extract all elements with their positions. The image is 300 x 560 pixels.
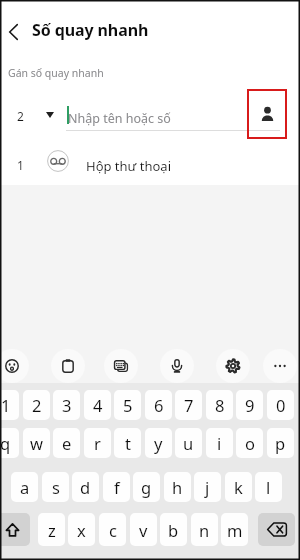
staticText: 1 [1,394,11,416]
button[interactable]: u [175,428,202,458]
staticText: s [52,476,60,498]
staticText: x [77,519,86,541]
staticText: z [48,519,56,541]
staticText: Số quay nhanh [32,19,149,41]
button[interactable]: More options [263,349,297,383]
button[interactable]: s [42,472,69,502]
staticText: l [266,476,271,498]
staticText: 6 [154,394,164,416]
staticText: v [139,519,148,541]
button[interactable]: 1 [0,390,19,420]
staticText: y [154,432,163,454]
staticText: w [30,432,43,454]
button[interactable] [0,144,300,184]
staticText: n [199,519,210,541]
staticText: h [172,476,183,498]
button[interactable]: Open contacts [248,90,286,138]
button[interactable]: Clipboard [51,349,85,383]
staticText: 1 [17,157,24,173]
button[interactable]: y [145,428,172,458]
staticText: f [114,476,120,498]
button[interactable]: c [99,513,126,546]
staticText: d [80,476,91,498]
staticText: Hộp thư thoại [86,157,171,175]
staticText: t [125,432,131,454]
button[interactable]: Keyboard settings [216,349,250,383]
button[interactable]: e [53,428,80,458]
staticText: r [94,432,101,454]
button[interactable]: n [191,513,218,546]
button[interactable]: h [164,472,191,502]
staticText: 3 [62,394,72,416]
staticText: q [0,432,11,454]
button[interactable]: p [267,428,294,458]
button[interactable]: Select speed dial number [38,103,62,127]
button[interactable]: Backspace [258,513,295,546]
button[interactable]: 5 [114,390,141,420]
button[interactable]: a [11,472,38,502]
staticText: Gán số quay nhanh [8,66,104,80]
staticText: i [217,432,222,454]
button[interactable]: Stickers [104,349,138,383]
staticText: j [205,476,210,498]
staticText: k [234,476,243,498]
staticText: g [141,476,152,498]
button[interactable]: 2 [23,390,50,420]
button[interactable]: 0 [267,390,294,420]
button[interactable]: Voice input [160,349,194,383]
staticText: 8 [215,394,225,416]
staticText: u [183,432,194,454]
staticText: m [227,519,243,541]
button[interactable]: f [103,472,130,502]
button[interactable]: z [38,513,65,546]
staticText: a [20,476,30,498]
button[interactable]: d [72,472,99,502]
staticText: e [62,432,72,454]
staticText: 4 [93,394,103,416]
button[interactable]: q [0,428,19,458]
button[interactable]: g [133,472,160,502]
button[interactable]: m [221,513,248,546]
button[interactable]: 4 [84,390,111,420]
staticText: 7 [184,394,194,416]
button[interactable]: v [130,513,157,546]
button[interactable]: 7 [175,390,202,420]
button[interactable]: Emoji [0,349,29,383]
staticText: 0 [276,394,286,416]
button[interactable]: 6 [145,390,172,420]
button[interactable]: l [255,472,282,502]
staticText: b [168,519,179,541]
staticText: 9 [245,394,255,416]
button[interactable]: x [68,513,95,546]
button[interactable]: t [114,428,141,458]
button[interactable]: 9 [236,390,263,420]
button[interactable]: k [225,472,252,502]
button[interactable]: 8 [206,390,233,420]
staticText: 2 [32,394,42,416]
button[interactable]: Back [0,16,29,48]
button[interactable]: w [23,428,50,458]
staticText: Nhập tên hoặc số [68,110,171,127]
staticText: c [109,519,117,541]
button[interactable]: Shift [0,513,30,546]
button[interactable]: i [206,428,233,458]
staticText: p [275,432,286,454]
button[interactable]: b [160,513,187,546]
button[interactable]: 3 [53,390,80,420]
staticText: 2 [17,108,24,124]
staticText: 5 [123,394,133,416]
button[interactable]: r [84,428,111,458]
button[interactable]: o [236,428,263,458]
button[interactable]: j [194,472,221,502]
staticText: o [245,432,255,454]
